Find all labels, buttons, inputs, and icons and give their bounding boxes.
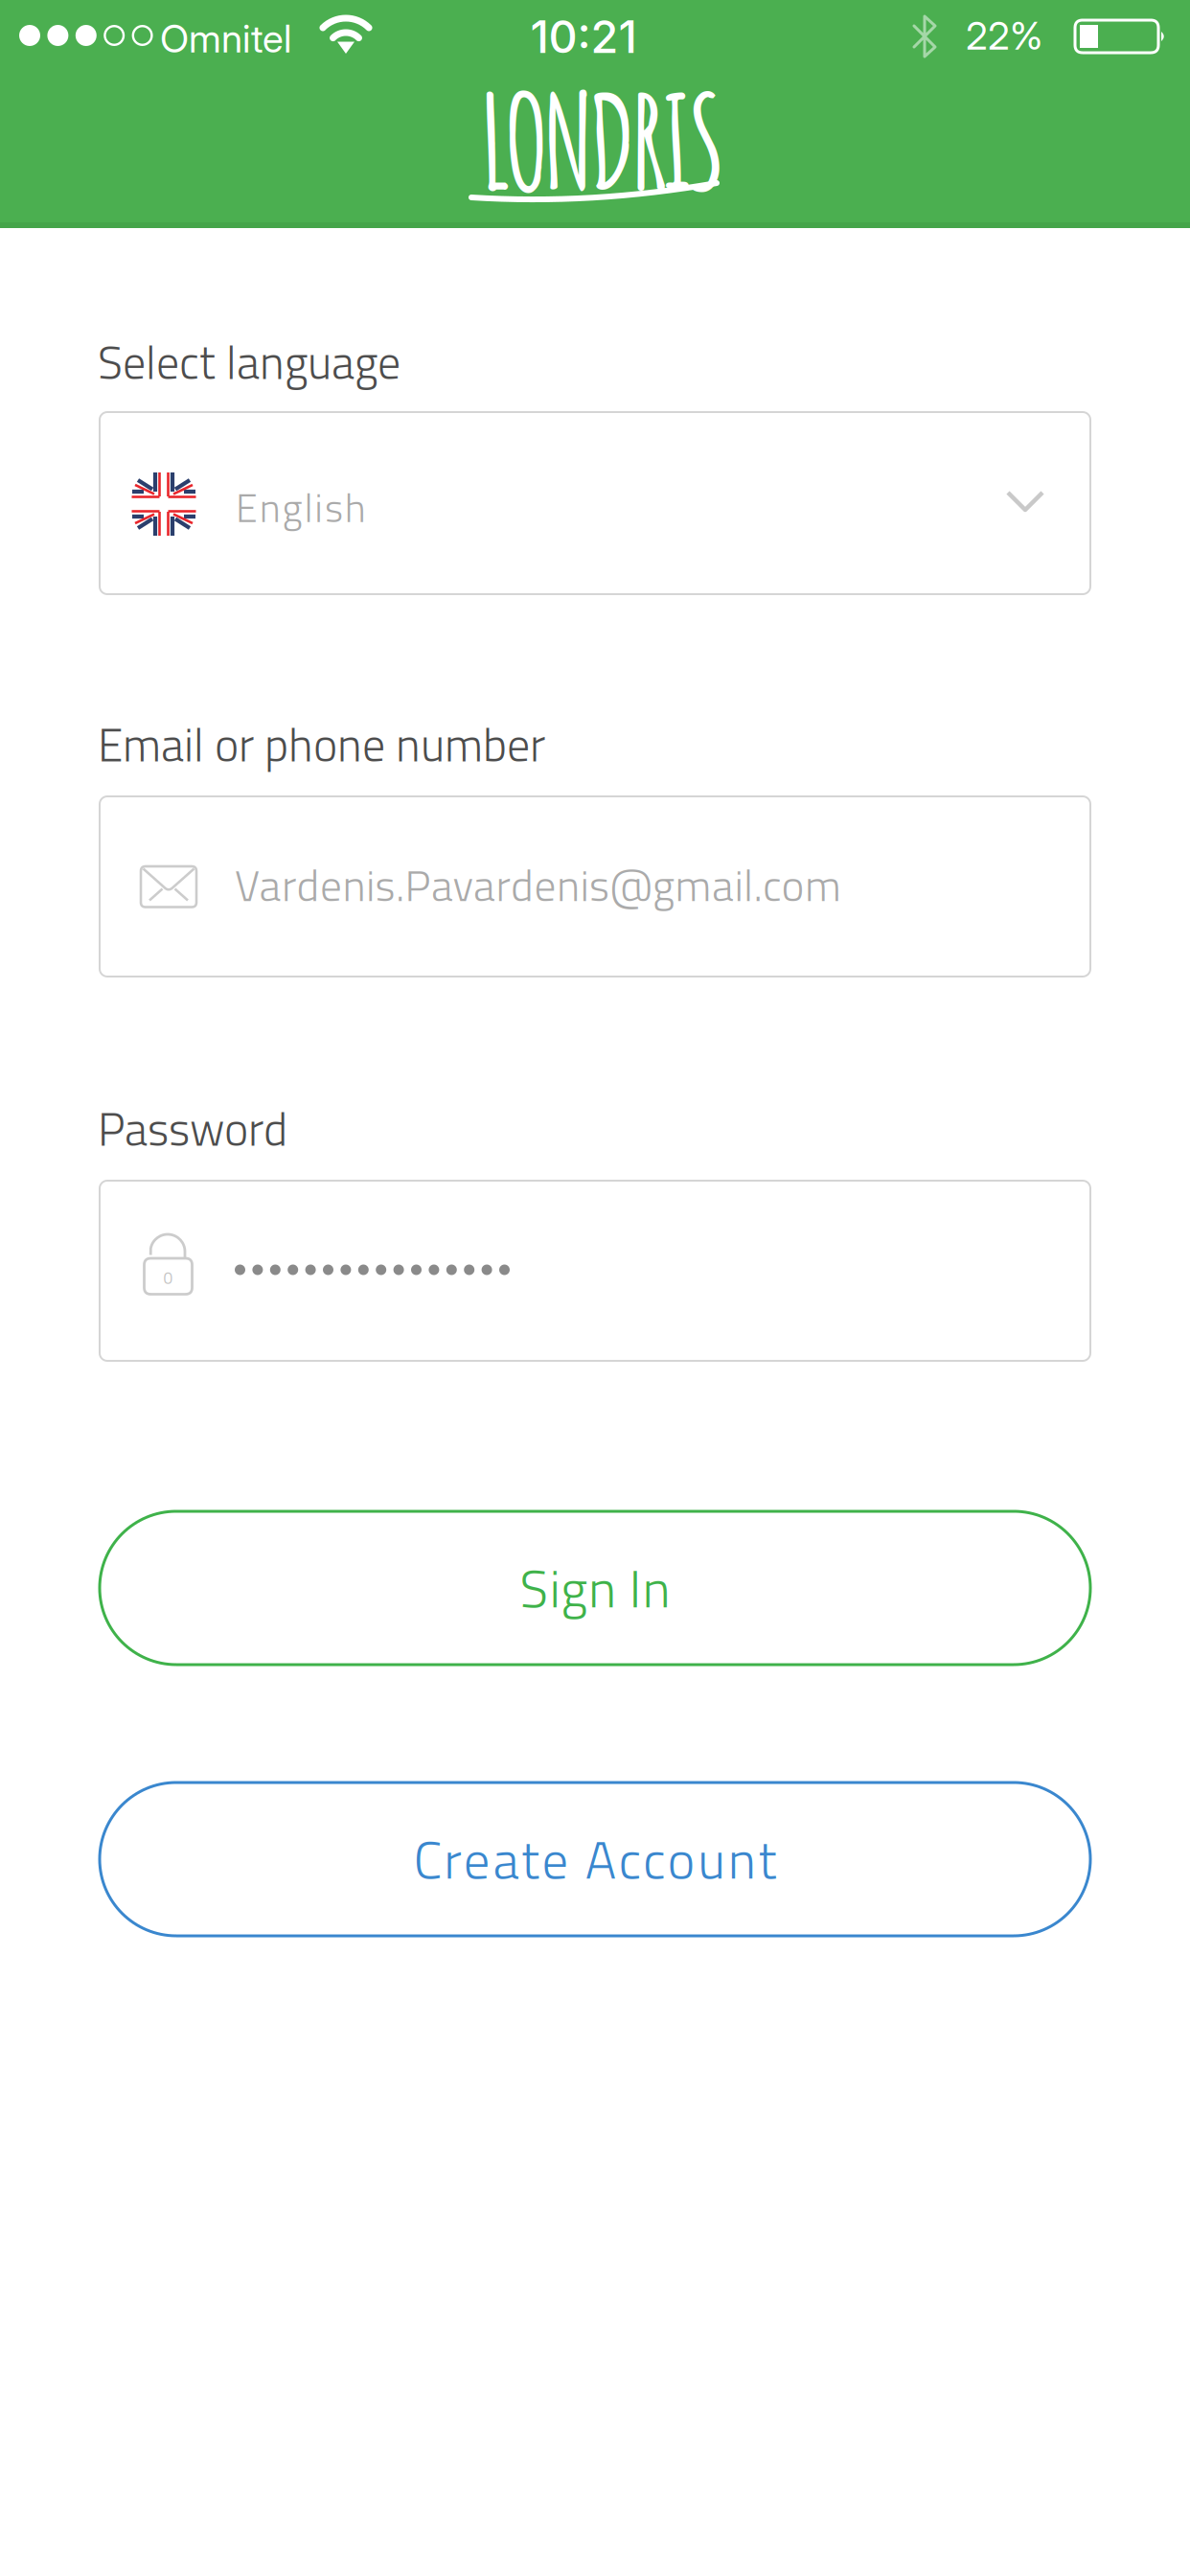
button[interactable]: Select language <box>100 412 1090 594</box>
button[interactable]: Email or phone number <box>100 796 1090 977</box>
staticText: Vardenis.Pavardenis@gmail.com <box>235 852 841 918</box>
button[interactable]: Sign In <box>100 1511 1090 1665</box>
staticText: English <box>236 477 366 538</box>
staticText: Sign In <box>520 1548 670 1628</box>
staticText: 22% <box>966 12 1042 59</box>
staticText: Password <box>98 1093 287 1163</box>
button[interactable]: Create Account <box>100 1782 1090 1936</box>
staticText: LONDRIS <box>479 59 726 221</box>
button[interactable]: Password <box>100 1181 1090 1361</box>
staticText: Omnitel <box>160 15 291 62</box>
staticText: 10:21 <box>530 10 637 64</box>
staticText: 0 <box>163 1265 173 1290</box>
staticText: Create Account <box>414 1819 776 1899</box>
staticText: Email or phone number <box>98 709 545 779</box>
staticText: Select language <box>98 327 400 397</box>
